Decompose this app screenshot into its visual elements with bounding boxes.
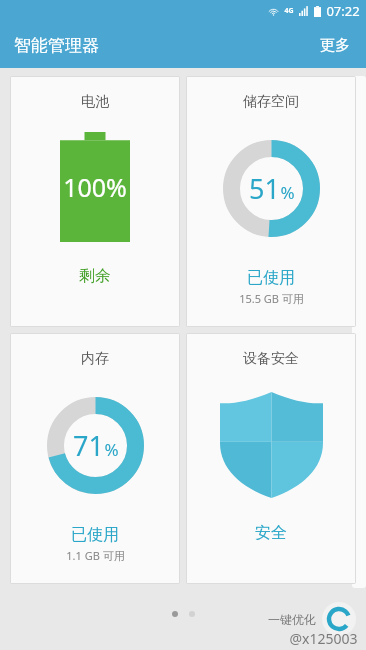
staticText: @x125003 — [289, 629, 358, 648]
staticText: 71 — [73, 427, 104, 464]
staticText: 100% — [63, 170, 127, 204]
staticText: % — [280, 181, 295, 204]
staticText: 07:22 — [326, 2, 360, 20]
other: 一键优化 — [322, 602, 356, 636]
button[interactable]: 电池 — [11, 77, 179, 326]
staticText: 设备安全 — [243, 350, 299, 368]
staticText: 智能管理器 — [14, 35, 99, 56]
staticText: 更多 — [320, 36, 350, 55]
staticText: 4G — [284, 6, 294, 16]
staticText: 一键优化 — [268, 612, 316, 627]
staticText: 安全 — [255, 523, 287, 543]
staticText: 内存 — [81, 350, 109, 368]
staticText: 电池 — [81, 93, 109, 111]
button[interactable]: 内存 — [11, 334, 179, 583]
button[interactable]: 一键优化 — [268, 602, 356, 636]
button[interactable]: 更多 — [304, 26, 366, 65]
button[interactable]: 设备安全 — [187, 334, 355, 583]
staticText: 15.5 GB 可用 — [239, 291, 304, 306]
button[interactable]: 储存空间 — [187, 77, 355, 326]
staticText: 已使用 — [71, 525, 119, 545]
staticText: 已使用 — [247, 268, 295, 288]
staticText: 1.1 GB 可用 — [66, 548, 125, 563]
staticText: 剩余 — [79, 266, 111, 286]
staticText: % — [104, 438, 119, 461]
staticText: 51 — [249, 170, 280, 207]
staticText: 储存空间 — [243, 93, 299, 111]
